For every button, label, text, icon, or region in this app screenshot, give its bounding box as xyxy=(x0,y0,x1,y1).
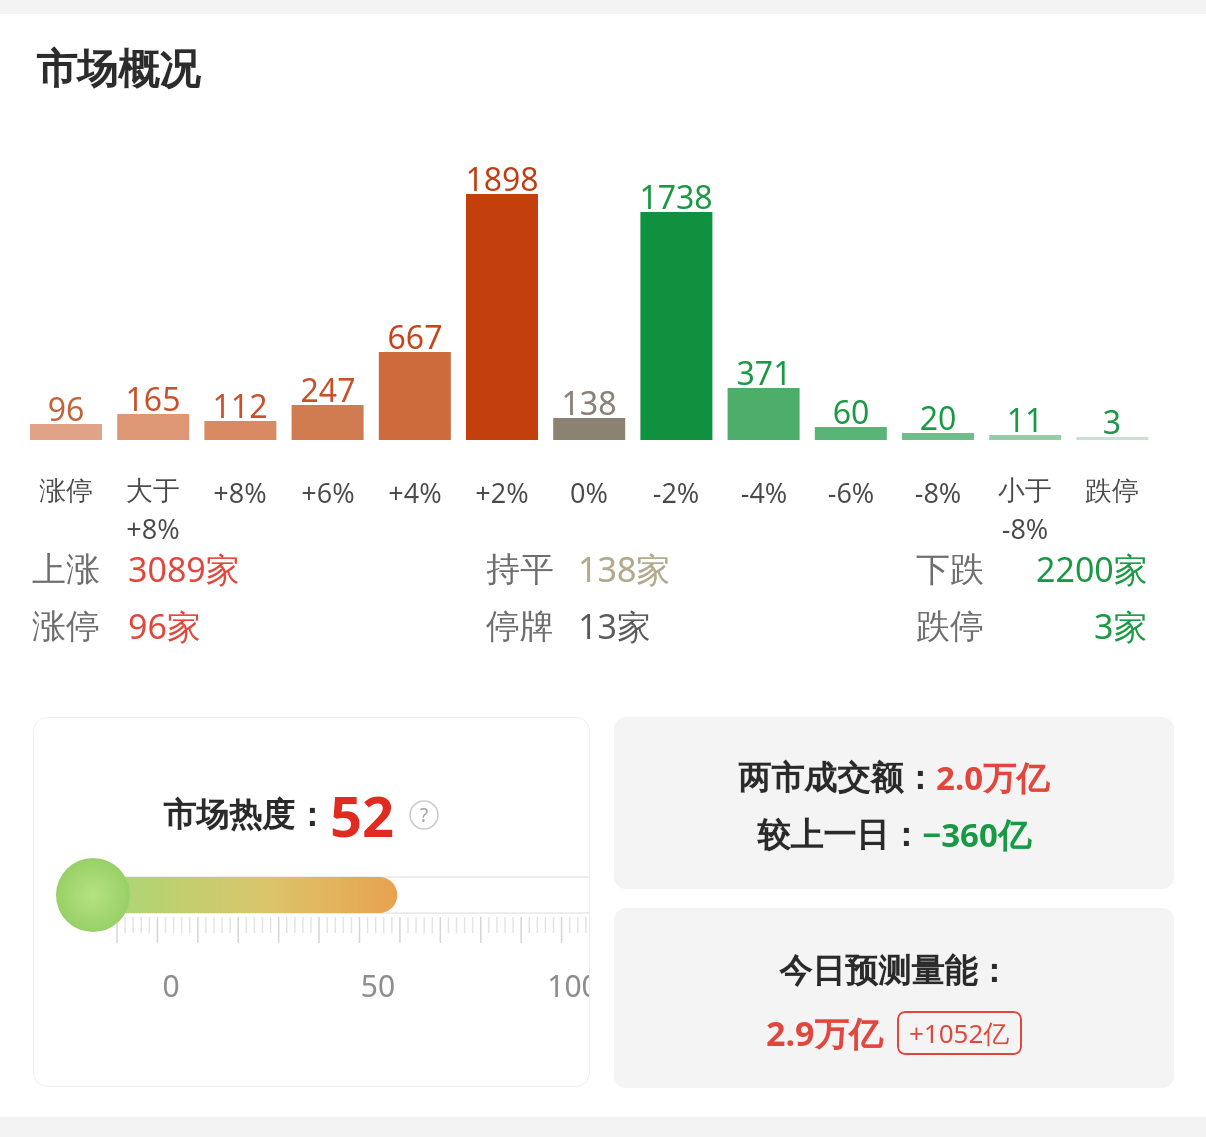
staticText: +1052亿 xyxy=(909,1015,1010,1051)
staticText: -4% xyxy=(708,474,820,511)
staticText: +8% xyxy=(184,474,296,511)
staticText: ? xyxy=(420,802,429,828)
button[interactable]: +1052亿 xyxy=(909,1015,1010,1051)
staticText: 247 xyxy=(278,368,378,412)
button[interactable]: 今日预测量能： xyxy=(614,908,1174,1088)
staticText: 3家 xyxy=(1094,603,1148,649)
staticText: -6% xyxy=(795,474,907,511)
staticText: 持平 xyxy=(470,548,570,591)
staticText: 大于 xyxy=(97,474,209,508)
staticText: 0% xyxy=(533,474,645,511)
staticText: 3089家 xyxy=(128,546,240,592)
staticText: 112 xyxy=(190,384,290,428)
staticText: 667 xyxy=(365,315,465,359)
staticText: 165 xyxy=(103,377,203,421)
staticText: 0 xyxy=(121,965,221,1006)
staticText: 下跌 xyxy=(916,548,984,591)
staticText: 96 xyxy=(16,387,116,431)
staticText: 20 xyxy=(888,396,988,440)
staticText: 50 xyxy=(328,965,428,1006)
staticText: 2.9万亿 xyxy=(766,1010,883,1056)
staticText: 两市成交额： xyxy=(738,757,936,799)
staticText: +4% xyxy=(359,474,471,511)
staticText: 小于 xyxy=(969,474,1081,508)
button[interactable]: 帮助说明 xyxy=(409,800,439,830)
staticText: 96家 xyxy=(128,603,201,649)
staticText: -8% xyxy=(882,474,994,511)
staticText: 100 xyxy=(523,965,590,1006)
staticText: 今日预测量能： xyxy=(779,950,1010,992)
staticText: 2200家 xyxy=(1036,546,1148,592)
staticText: +2% xyxy=(446,474,558,511)
staticText: 市场概况 xyxy=(36,44,200,96)
button[interactable]: 跌停 xyxy=(916,603,1148,649)
staticText: 138家 xyxy=(578,546,671,592)
staticText: -8% xyxy=(969,510,1081,547)
staticText: 1738 xyxy=(626,175,726,219)
staticText: 市场热度： xyxy=(163,794,328,836)
button[interactable]: 持平 xyxy=(470,546,671,592)
staticText: 52 xyxy=(330,777,395,853)
staticText: -2% xyxy=(620,474,732,511)
staticText: 2.0万亿 xyxy=(936,755,1050,800)
staticText: 停牌 xyxy=(470,605,570,648)
button[interactable]: 停牌 xyxy=(470,603,651,649)
button[interactable]: 涨停 xyxy=(12,603,201,649)
staticText: +8% xyxy=(97,510,209,547)
staticText: 涨停 xyxy=(10,474,122,508)
staticText: +6% xyxy=(272,474,384,511)
button[interactable]: 市场热度： xyxy=(33,717,590,1087)
staticText: 上涨 xyxy=(12,548,120,591)
button[interactable]: 下跌 xyxy=(916,546,1148,592)
staticText: 较上一日： xyxy=(757,814,922,856)
staticText: 跌停 xyxy=(1056,474,1168,508)
staticText: 13家 xyxy=(578,603,651,649)
staticText: 371 xyxy=(714,351,814,395)
staticText: 11 xyxy=(975,398,1075,442)
staticText: 跌停 xyxy=(916,605,984,648)
button[interactable]: 上涨 xyxy=(12,546,240,592)
staticText: 3 xyxy=(1062,400,1162,444)
staticText: 1898 xyxy=(452,157,552,201)
button[interactable]: 两市成交额： xyxy=(614,717,1174,889)
button[interactable]: 市场概况 xyxy=(36,44,200,96)
staticText: 涨停 xyxy=(12,605,120,648)
staticText: 138 xyxy=(539,381,639,425)
staticText: −360亿 xyxy=(922,812,1031,857)
staticText: 60 xyxy=(801,390,901,434)
